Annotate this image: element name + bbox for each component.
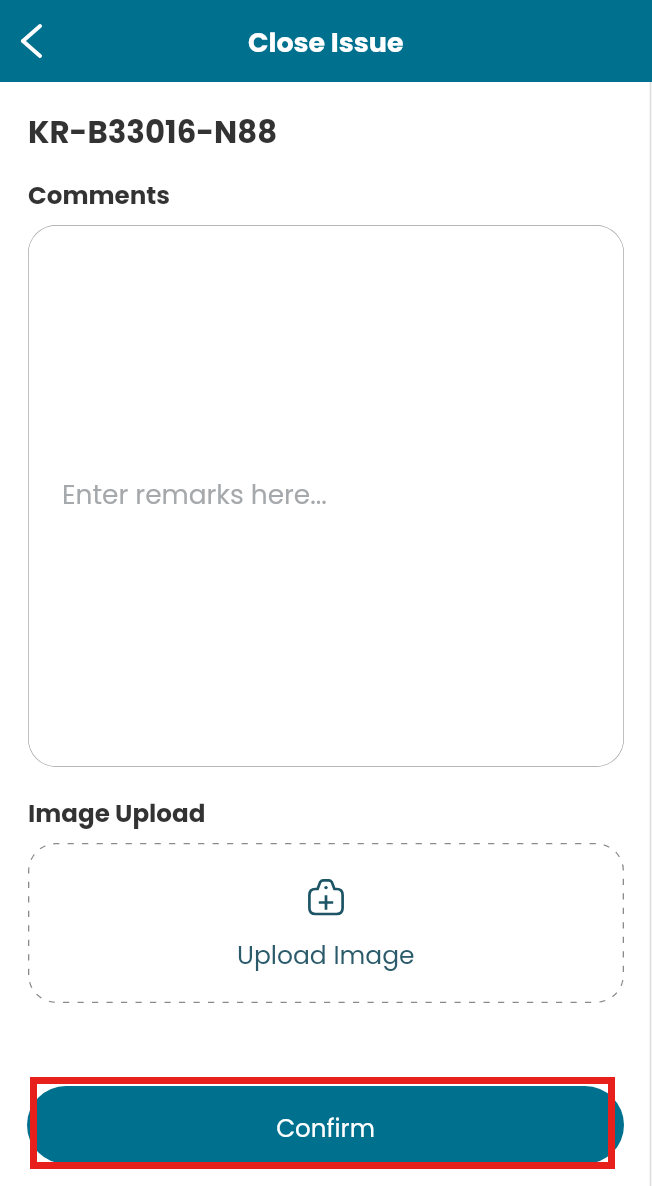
- staticText: Comments: [28, 178, 170, 212]
- button[interactable]: Back: [0, 10, 62, 72]
- button[interactable]: Upload Image: [28, 843, 624, 1003]
- staticText: Image Upload: [28, 796, 206, 830]
- button[interactable]: Enter remarks here...: [28, 225, 624, 767]
- staticText: Close Issue: [248, 24, 404, 62]
- staticText: Upload Image: [237, 938, 415, 973]
- button[interactable]: Confirm: [27, 1086, 624, 1164]
- staticText: Enter remarks here...: [62, 476, 327, 513]
- staticText: KR-B33016-N88: [28, 111, 278, 154]
- staticText: Confirm: [276, 1111, 375, 1145]
